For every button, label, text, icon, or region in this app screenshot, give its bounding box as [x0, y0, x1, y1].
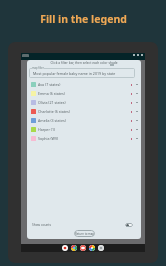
- staticText: Emma (6 states): [38, 91, 65, 96]
- button[interactable]: Return to map: [74, 230, 95, 237]
- button[interactable]: App icon: [71, 245, 77, 251]
- button[interactable]: Harper (1): [27, 125, 141, 134]
- button[interactable]: Ava (7 states): [27, 80, 141, 89]
- button[interactable]: App icon: [89, 245, 95, 251]
- staticText: Sophia (WV): [38, 136, 59, 141]
- button[interactable]: App icon: [80, 245, 86, 251]
- staticText: Olivia (21 states): [38, 100, 66, 105]
- staticText: Charlotte (6 states): [38, 109, 70, 114]
- button[interactable]: Amelia (3 states): [27, 116, 141, 125]
- staticText: Amelia (3 states): [38, 118, 66, 123]
- staticText: Fill in the legend: [40, 12, 127, 25]
- button[interactable]: Show counts toggle: [125, 223, 133, 227]
- button[interactable]: Sophia (WV): [27, 134, 141, 143]
- staticText: Harper (1): [38, 127, 56, 132]
- button[interactable]: Charlotte (6 states): [27, 107, 141, 116]
- staticText: Click a filter bar, then select each col…: [27, 61, 141, 65]
- staticText: map filter: [32, 66, 44, 70]
- button[interactable]: Browser tab: [22, 54, 29, 57]
- button[interactable]: Olivia (21 states): [27, 98, 141, 107]
- staticText: Return to map: [75, 232, 94, 236]
- button[interactable]: Emma (6 states): [27, 89, 141, 98]
- button[interactable]: App icon: [62, 245, 68, 251]
- button[interactable]: App icon: [98, 245, 104, 251]
- staticText: Ava (7 states): [38, 82, 61, 87]
- button[interactable]: Most popular female baby name in 2019 by…: [29, 68, 135, 78]
- staticText: Show counts: [32, 223, 51, 227]
- staticText: Most popular female baby name in 2019 by…: [33, 71, 116, 76]
